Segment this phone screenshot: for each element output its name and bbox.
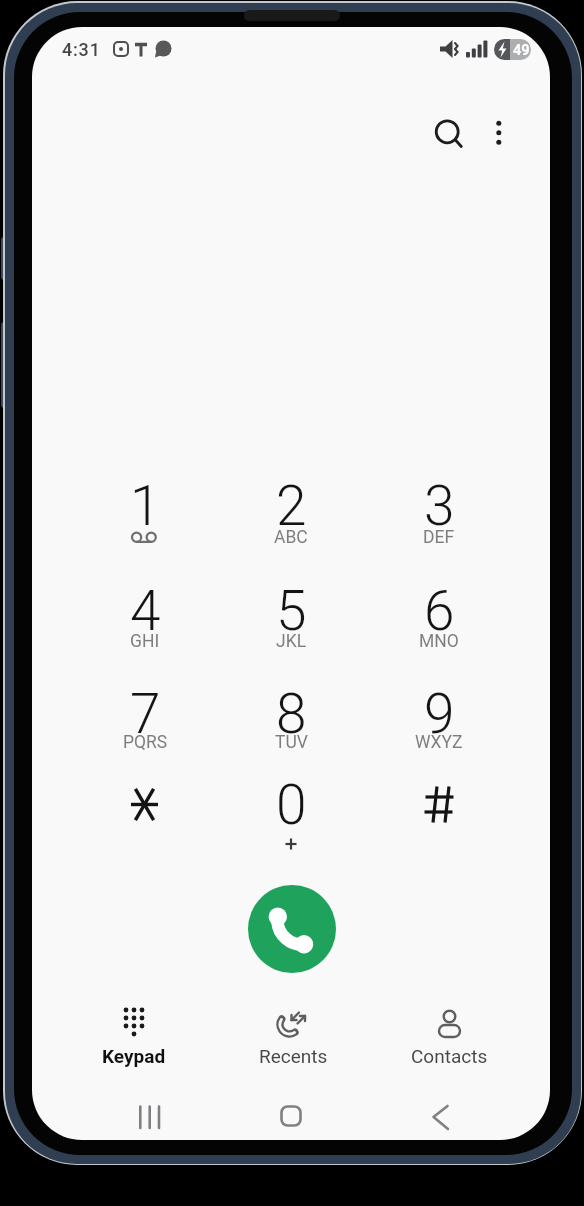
staticText: Recents: [259, 1045, 328, 1067]
button[interactable]: [89, 578, 201, 664]
button[interactable]: [235, 772, 347, 858]
staticText: 4:31: [62, 39, 101, 60]
staticText: 1: [130, 474, 161, 538]
staticText: TUV: [275, 732, 308, 753]
staticText: 6: [424, 579, 455, 643]
staticText: 3: [424, 474, 455, 538]
button[interactable]: [409, 1097, 473, 1137]
button[interactable]: [383, 578, 495, 664]
button[interactable]: [89, 772, 201, 858]
staticText: MNO: [419, 631, 459, 652]
button[interactable]: [235, 681, 347, 767]
staticText: 8: [276, 682, 307, 746]
button[interactable]: [235, 578, 347, 664]
staticText: JKL: [276, 631, 307, 652]
button[interactable]: [235, 473, 347, 559]
button[interactable]: [248, 885, 336, 973]
staticText: 9: [424, 682, 455, 746]
staticText: 7: [130, 682, 161, 746]
staticText: DEF: [423, 527, 455, 548]
staticText: 4: [130, 579, 161, 643]
button[interactable]: [118, 1097, 182, 1137]
button[interactable]: [383, 1000, 515, 1064]
staticText: Contacts: [411, 1045, 488, 1067]
button[interactable]: [383, 681, 495, 767]
staticText: 0: [276, 773, 307, 837]
button[interactable]: [425, 110, 469, 154]
button[interactable]: [383, 473, 495, 559]
staticText: WXYZ: [415, 732, 463, 753]
staticText: Keypad: [102, 1045, 166, 1067]
button[interactable]: [481, 110, 517, 154]
button[interactable]: [248, 885, 336, 973]
button[interactable]: [89, 681, 201, 767]
button[interactable]: [383, 772, 495, 858]
staticText: 49: [513, 42, 530, 59]
button[interactable]: [68, 1000, 200, 1064]
staticText: 5: [276, 579, 307, 643]
button[interactable]: [89, 473, 201, 559]
staticText: GHI: [130, 631, 160, 652]
button[interactable]: [227, 1000, 359, 1064]
button[interactable]: [259, 1097, 323, 1137]
staticText: 2: [276, 474, 307, 538]
staticText: PQRS: [123, 732, 168, 753]
staticText: ABC: [274, 527, 308, 548]
